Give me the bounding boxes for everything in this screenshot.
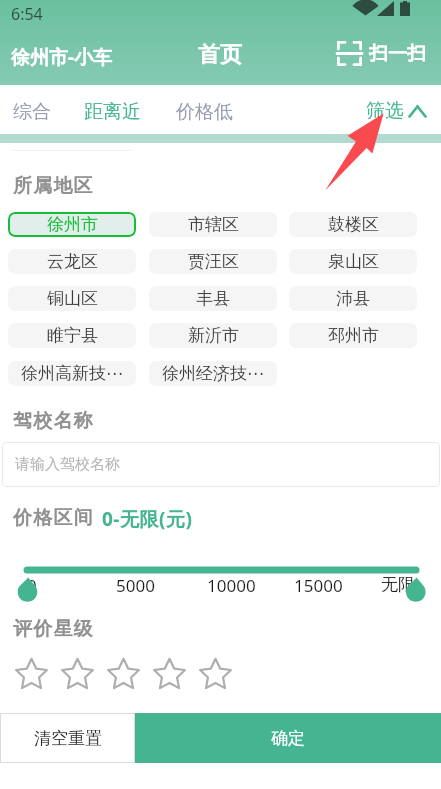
button[interactable]: 铜山区: [8, 286, 136, 311]
staticText: 所属地区: [13, 174, 94, 198]
staticText: 徐州高新技⋯: [21, 363, 123, 384]
staticText: 0-无限(元): [102, 506, 193, 532]
button[interactable]: 距离近: [84, 100, 141, 124]
staticText: 首页: [198, 41, 242, 69]
button[interactable]: 徐州市: [8, 212, 136, 237]
staticText: 泉山区: [328, 251, 379, 272]
staticText: 15000: [294, 574, 343, 597]
button[interactable]: 沛县: [289, 286, 417, 311]
button[interactable]: Rating 1 star: [15, 658, 48, 690]
staticText: 新沂市: [188, 325, 239, 346]
staticText: 徐州经济技⋯: [162, 363, 264, 384]
button[interactable]: Rating 4 star: [153, 658, 186, 690]
button[interactable]: Rating 2 star: [61, 658, 94, 690]
button[interactable]: 市辖区: [149, 212, 277, 237]
staticText: 筛选: [366, 99, 404, 123]
button[interactable]: 云龙区: [8, 249, 136, 274]
button[interactable]: 新沂市: [149, 323, 277, 348]
staticText: 扫一扫: [369, 42, 426, 66]
staticText: 确定: [271, 728, 305, 749]
staticText: 无限: [381, 574, 415, 595]
button[interactable]: 确定: [135, 713, 441, 763]
button[interactable]: Rating 3 star: [107, 658, 140, 690]
staticText: 沛县: [336, 288, 370, 309]
button[interactable]: Scan QR code: [337, 41, 426, 66]
button[interactable]: 丰县: [149, 286, 277, 311]
staticText: 云龙区: [47, 251, 98, 272]
staticText: 鼓楼区: [328, 214, 379, 235]
staticText: 睢宁县: [47, 325, 98, 346]
staticText: 徐州市: [47, 214, 98, 235]
button[interactable]: 徐州高新技⋯: [8, 361, 136, 386]
staticText: 驾校名称: [13, 409, 94, 433]
button[interactable]: 徐州经济技⋯: [149, 361, 277, 386]
staticText: 请输入驾校名称: [15, 455, 120, 474]
staticText: 5000: [116, 574, 155, 597]
staticText: 贾汪区: [188, 251, 239, 272]
staticText: 丰县: [196, 288, 230, 309]
staticText: 邳州市: [328, 325, 379, 346]
staticText: 评价星级: [13, 617, 94, 641]
button[interactable]: 价格低: [176, 100, 233, 124]
staticText: 0: [27, 574, 37, 597]
button[interactable]: 清空重置: [0, 713, 135, 763]
other: Scan QR code: [337, 41, 362, 66]
button[interactable]: 鼓楼区: [289, 212, 417, 237]
button[interactable]: 邳州市: [289, 323, 417, 348]
button[interactable]: 徐州市-小车: [11, 44, 113, 70]
staticText: 10000: [207, 574, 256, 597]
button[interactable]: 睢宁县: [8, 323, 136, 348]
staticText: 价格区间: [13, 506, 94, 530]
button[interactable]: 综合: [13, 100, 51, 124]
staticText: 清空重置: [34, 728, 102, 749]
staticText: 铜山区: [47, 288, 98, 309]
button[interactable]: Rating 5 star: [199, 658, 232, 690]
button[interactable]: 泉山区: [289, 249, 417, 274]
staticText: 6:54: [11, 3, 43, 25]
button[interactable]: 贾汪区: [149, 249, 277, 274]
staticText: 市辖区: [188, 214, 239, 235]
button[interactable]: 筛选: [366, 99, 427, 123]
button[interactable]: 请输入驾校名称: [2, 442, 440, 487]
